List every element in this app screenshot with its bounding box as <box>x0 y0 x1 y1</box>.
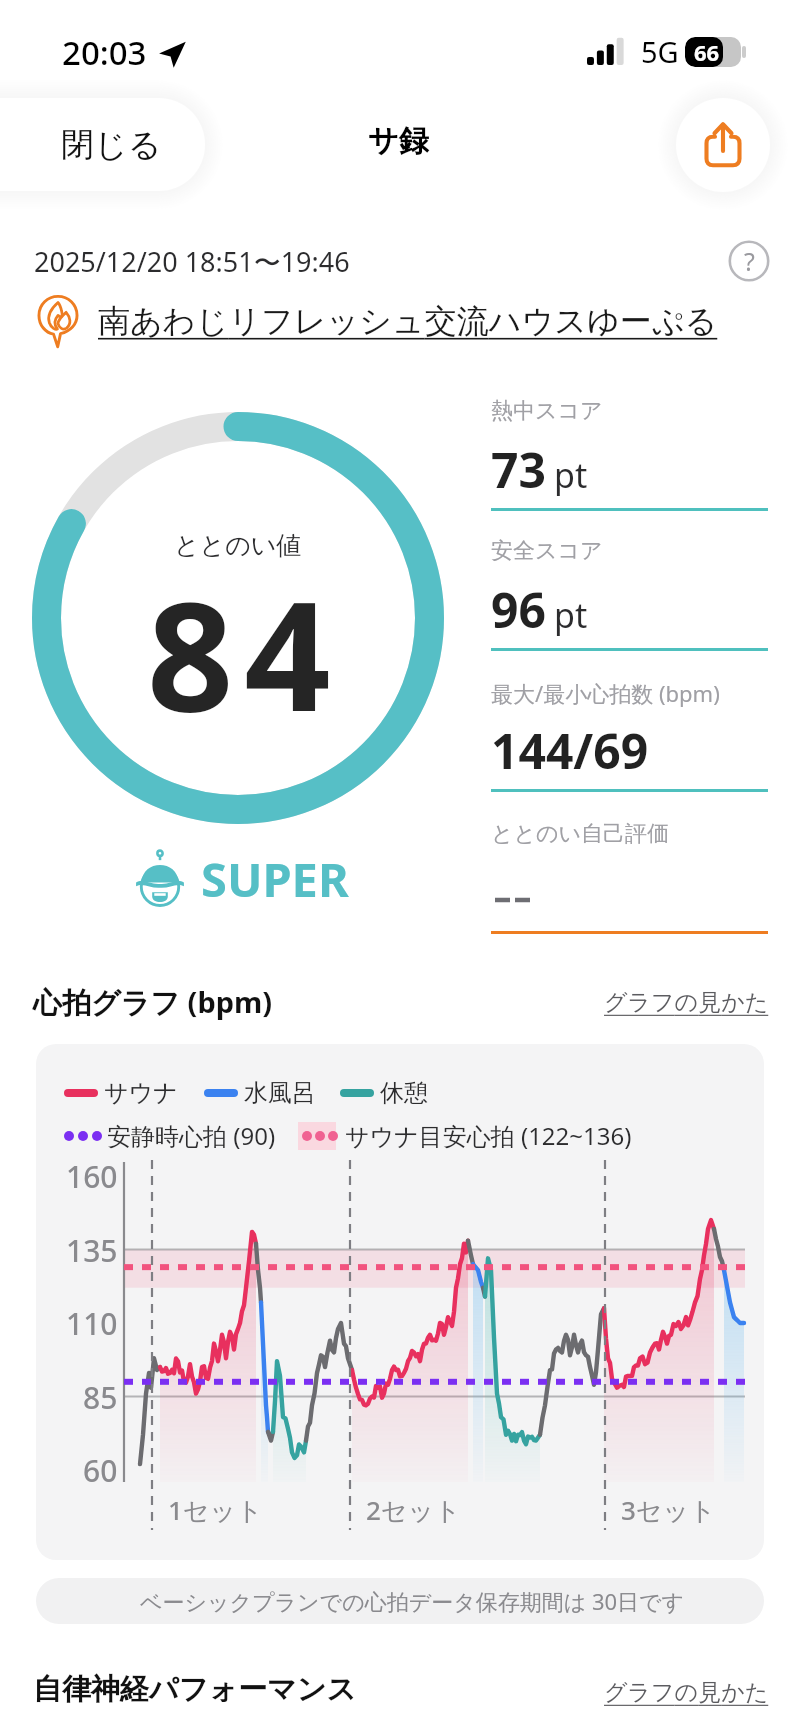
staticText: ベーシックプランでの心拍データ保存期間は 30日です <box>140 1586 685 1616</box>
staticText: 水風呂 <box>244 1078 316 1108</box>
staticText: ととのい値 <box>174 530 302 561</box>
staticText: SUPER <box>201 847 349 911</box>
staticText: 2セット <box>366 1492 461 1528</box>
staticText: pt <box>554 452 588 498</box>
staticText: 南あわじリフレッシュ交流ハウスゆーぷる <box>98 301 718 341</box>
staticText: 5G <box>641 32 679 71</box>
staticText: 20:03 <box>62 30 147 75</box>
staticText: 96 <box>491 577 546 642</box>
staticText: 73 <box>491 437 546 502</box>
button[interactable]: グラフの見かた <box>604 988 769 1017</box>
button[interactable]: 閉じる <box>0 98 205 191</box>
staticText: ととのい自己評価 <box>491 820 670 848</box>
staticText: 熱中スコア <box>491 397 603 425</box>
staticText: 85 <box>83 1377 118 1413</box>
staticText: 110 <box>66 1303 118 1339</box>
staticText: 休憩 <box>380 1078 428 1108</box>
staticText: 安静時心拍 (90) <box>107 1119 276 1152</box>
staticText: 60 <box>83 1450 118 1486</box>
staticText: 安全スコア <box>491 537 603 565</box>
staticText: 135 <box>66 1230 118 1266</box>
staticText: 最大/最小心拍数 (bpm) <box>491 678 720 708</box>
button[interactable]: 南あわじリフレッシュ交流ハウスゆーぷる <box>30 293 718 349</box>
staticText: 3セット <box>621 1492 716 1528</box>
button[interactable]: Share <box>676 98 770 192</box>
staticText: 160 <box>66 1156 118 1192</box>
button[interactable]: グラフの見かた <box>604 1678 769 1707</box>
staticText: 84 <box>147 550 342 756</box>
staticText: 自律神経パフォーマンス <box>33 1671 357 1708</box>
button[interactable]: Help <box>728 240 770 282</box>
staticText: ? <box>744 244 755 278</box>
staticText: 66 <box>694 37 720 67</box>
staticText: 144/69 <box>491 718 649 783</box>
staticText: 2025/12/20 18:51〜19:46 <box>34 243 350 280</box>
staticText: サ録 <box>368 122 429 160</box>
staticText: サウナ目安心拍 (122~136) <box>345 1119 632 1152</box>
staticText: pt <box>554 592 588 638</box>
staticText: サウナ <box>104 1078 178 1108</box>
staticText: 閉じる <box>61 124 162 166</box>
staticText: 1セット <box>168 1492 263 1528</box>
staticText: 心拍グラフ (bpm) <box>33 982 273 1022</box>
